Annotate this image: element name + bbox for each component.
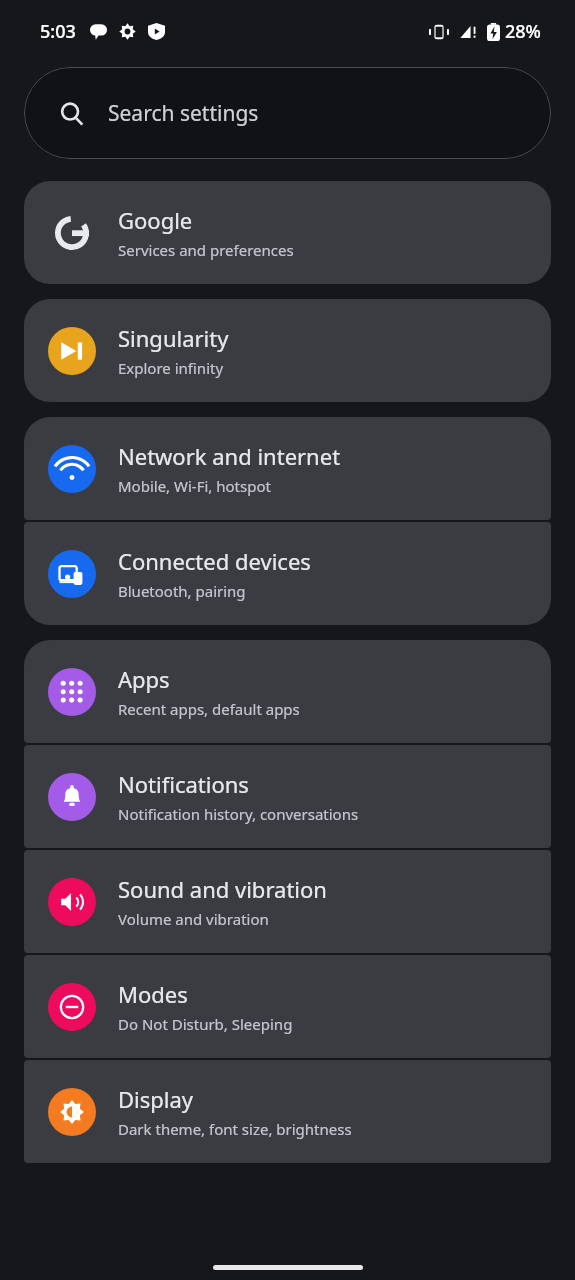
staticText: Do Not Disturb, Sleeping [118, 1014, 293, 1034]
staticText: Services and preferences [118, 240, 294, 260]
staticText: Explore infinity [118, 358, 224, 378]
staticText: Network and internet [118, 441, 341, 471]
button[interactable]: Notifications [24, 745, 551, 848]
button[interactable]: Display [24, 1060, 551, 1163]
staticText: Apps [118, 664, 170, 694]
button[interactable]: Apps [24, 640, 551, 743]
button[interactable]: Connected devices [24, 522, 551, 625]
staticText: Sound and vibration [118, 874, 327, 904]
button[interactable]: Network and internet [24, 417, 551, 520]
staticText: Connected devices [118, 546, 311, 576]
button[interactable]: Search settings [24, 67, 551, 159]
staticText: Search settings [108, 99, 259, 128]
staticText: Volume and vibration [118, 909, 269, 929]
button[interactable]: Google [24, 181, 551, 284]
staticText: Recent apps, default apps [118, 699, 300, 719]
staticText: Notification history, conversations [118, 804, 359, 824]
staticText: 28% [505, 19, 541, 44]
staticText: Bluetooth, pairing [118, 581, 246, 601]
staticText: Dark theme, font size, brightness [118, 1119, 352, 1139]
staticText: Display [118, 1084, 194, 1114]
staticText: 5:03 [40, 19, 76, 44]
staticText: Singularity [118, 323, 229, 353]
button[interactable]: Sound and vibration [24, 850, 551, 953]
staticText: Mobile, Wi-Fi, hotspot [118, 476, 271, 496]
staticText: Notifications [118, 769, 249, 799]
staticText: Google [118, 205, 193, 235]
button[interactable]: Modes [24, 955, 551, 1058]
button[interactable]: Singularity [24, 299, 551, 402]
staticText: Modes [118, 979, 188, 1009]
